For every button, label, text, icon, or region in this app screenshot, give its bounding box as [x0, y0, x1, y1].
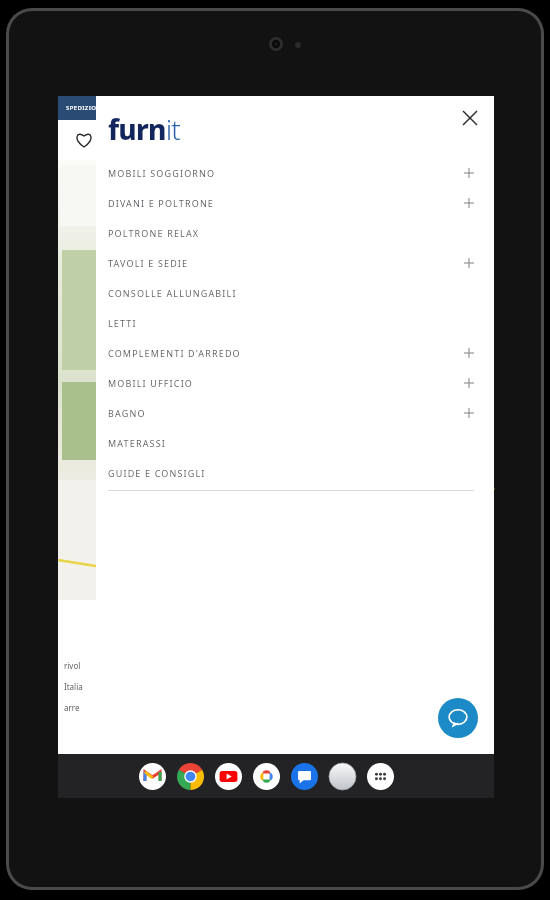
button[interactable]: CONSOLLE ALLUNGABILI — [96, 278, 494, 308]
staticText: GUIDE E CONSIGLI — [108, 467, 206, 479]
button[interactable]: Messages — [290, 762, 319, 791]
staticText: POLTRONE RELAX — [108, 227, 200, 239]
button[interactable]: Chat — [438, 698, 478, 738]
staticText: TAVOLI E SEDIE — [108, 257, 189, 269]
button[interactable]: MOBILI UFFICIO — [96, 368, 494, 398]
button[interactable]: Close menu — [454, 102, 486, 134]
button[interactable]: MOBILI SOGGIORNO — [96, 158, 494, 188]
staticText: rivol — [64, 660, 81, 671]
staticText: Italia — [64, 681, 83, 692]
staticText: MOBILI UFFICIO — [108, 377, 194, 389]
button[interactable]: YouTube — [214, 762, 243, 791]
staticText: MATERASSI — [108, 437, 166, 449]
button[interactable]: Photos — [252, 762, 281, 791]
staticText: BAGNO — [108, 407, 146, 419]
staticText: CONSOLLE ALLUNGABILI — [108, 287, 237, 299]
staticText: LETTI — [108, 317, 137, 329]
button[interactable]: GUIDE E CONSIGLI — [96, 458, 494, 488]
staticText: furnit — [108, 110, 181, 148]
button[interactable]: DIVANI E POLTRONE — [96, 188, 494, 218]
staticText: MOBILI SOGGIORNO — [108, 167, 216, 179]
button[interactable]: BAGNO — [96, 398, 494, 428]
button[interactable]: POLTRONE RELAX — [96, 218, 494, 248]
button[interactable]: TAVOLI E SEDIE — [96, 248, 494, 278]
button[interactable]: Furnit — [328, 762, 357, 791]
button[interactable]: All apps — [366, 762, 395, 791]
button[interactable]: COMPLEMENTI D'ARREDO — [96, 338, 494, 368]
staticText: SPEDIZIONE GRATUITA — [66, 104, 139, 112]
button[interactable]: LETTI — [96, 308, 494, 338]
button[interactable]: Chrome — [176, 762, 205, 791]
button[interactable]: Gmail — [138, 762, 167, 791]
staticText: DIVANI E POLTRONE — [108, 197, 215, 209]
button[interactable]: MATERASSI — [96, 428, 494, 458]
staticText: arre — [64, 702, 80, 713]
staticText: COMPLEMENTI D'ARREDO — [108, 347, 241, 359]
